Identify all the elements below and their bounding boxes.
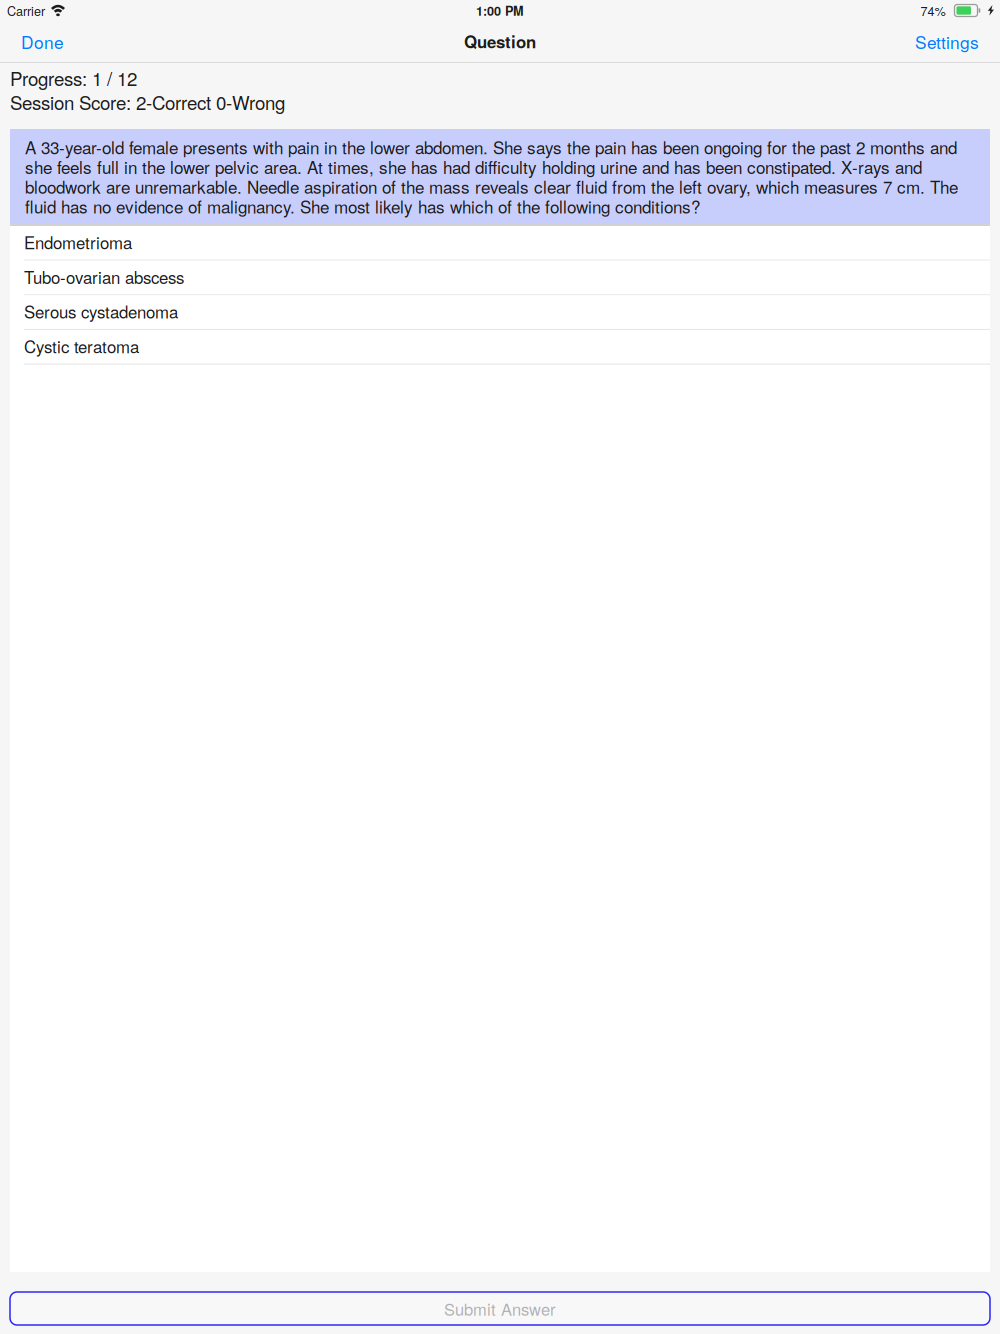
- button[interactable]: Endometrioma: [10, 226, 990, 261]
- staticText: Done: [21, 29, 64, 54]
- staticText: Serous cystadenoma: [24, 299, 178, 323]
- staticText: Carrier: [7, 1, 45, 19]
- staticText: Progress: 1 / 12: [10, 67, 137, 89]
- staticText: Endometrioma: [24, 230, 132, 254]
- staticText: Cystic teratoma: [24, 334, 139, 358]
- staticText: Settings: [915, 29, 979, 54]
- staticText: 74%: [920, 1, 945, 19]
- button[interactable]: Done: [0, 18, 80, 65]
- button[interactable]: Serous cystadenoma: [10, 295, 990, 330]
- staticText: A 33-year-old female presents with pain …: [25, 137, 958, 216]
- button[interactable]: Submit Answer: [10, 1292, 990, 1325]
- staticText: Question: [464, 29, 536, 54]
- staticText: 1:00 PM: [476, 1, 524, 19]
- staticText: Session Score: 2-Correct 0-Wrong: [10, 91, 285, 113]
- staticText: Tubo-ovarian abscess: [24, 265, 184, 289]
- staticText: Submit Answer: [444, 1297, 556, 1320]
- button[interactable]: Tubo-ovarian abscess: [10, 261, 990, 295]
- button[interactable]: Cystic teratoma: [10, 330, 990, 364]
- button[interactable]: Settings: [899, 18, 1000, 65]
